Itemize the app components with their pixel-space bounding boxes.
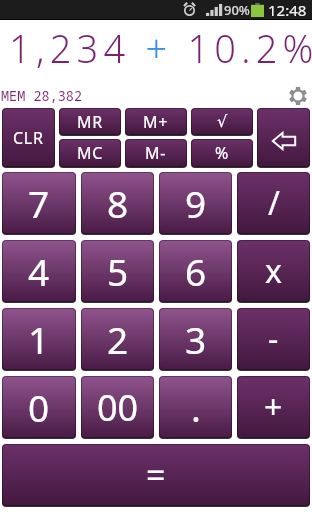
button[interactable]: x <box>237 240 310 302</box>
button[interactable]: 6 <box>159 240 232 302</box>
button[interactable]: % <box>191 139 253 167</box>
button[interactable]: √ <box>191 108 253 135</box>
button[interactable]: 0 <box>2 376 76 438</box>
button[interactable]: 7 <box>2 172 76 234</box>
staticText: CLR <box>13 127 44 149</box>
staticText: M- <box>145 142 167 164</box>
staticText: 6 <box>185 246 207 296</box>
button[interactable]: MC <box>59 139 121 167</box>
staticText: 7 <box>28 178 50 228</box>
staticText: 4 <box>28 246 50 296</box>
button[interactable]: = <box>2 444 310 506</box>
staticText: MR <box>77 111 103 133</box>
staticText: + <box>264 385 283 429</box>
button[interactable]: Settings <box>289 87 307 105</box>
staticText: 0 <box>28 382 50 432</box>
button[interactable]: 5 <box>81 240 154 302</box>
button[interactable] <box>257 108 310 167</box>
staticText: 12:48 <box>268 0 307 19</box>
staticText: 5 <box>107 246 129 296</box>
button[interactable]: MR <box>59 108 121 135</box>
staticText: 00 <box>97 383 139 432</box>
staticText: MEM 28,382 <box>1 87 82 105</box>
staticText: / <box>268 181 280 225</box>
staticText: M+ <box>143 111 169 133</box>
staticText: 90% <box>224 1 250 19</box>
button[interactable]: + <box>237 376 310 438</box>
button[interactable]: M+ <box>125 108 187 135</box>
button[interactable]: 3 <box>159 308 232 370</box>
staticText: 2 <box>107 314 129 364</box>
staticText: . <box>191 382 201 432</box>
staticText: % <box>215 142 229 164</box>
button[interactable]: - <box>237 308 310 370</box>
staticText: 9 <box>185 178 207 228</box>
button[interactable]: 4 <box>2 240 76 302</box>
button[interactable]: M- <box>125 139 187 167</box>
staticText: x <box>265 249 282 293</box>
staticText: √ <box>217 112 228 131</box>
staticText: - <box>268 317 279 361</box>
staticText: MC <box>77 142 104 164</box>
button[interactable]: 9 <box>159 172 232 234</box>
staticText: 8 <box>107 178 129 228</box>
button[interactable]: 1 <box>2 308 76 370</box>
button[interactable]: 2 <box>81 308 154 370</box>
button[interactable]: . <box>159 376 232 438</box>
button[interactable]: CLR <box>2 108 55 167</box>
button[interactable]: 8 <box>81 172 154 234</box>
staticText: 1 <box>28 314 50 364</box>
other: Backspace <box>257 108 310 167</box>
staticText: 3 <box>185 314 207 364</box>
staticText: = <box>146 452 166 498</box>
button[interactable]: 00 <box>81 376 154 438</box>
staticText: 1,234 + 10.2% <box>9 22 312 74</box>
button[interactable]: / <box>237 172 310 234</box>
